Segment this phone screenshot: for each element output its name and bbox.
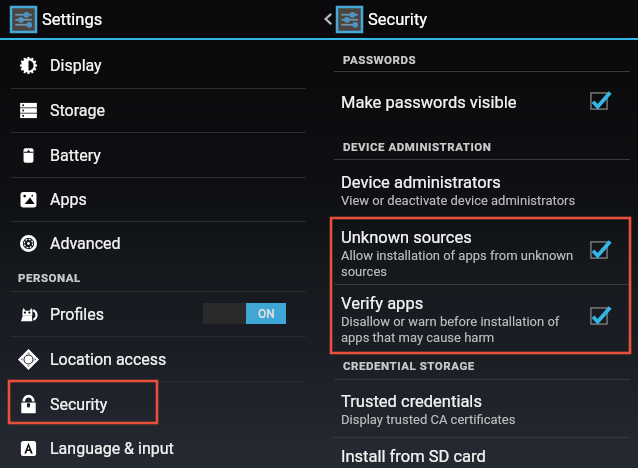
- staticText: Display trusted CA certificates: [341, 412, 516, 427]
- staticText: DEVICE ADMINISTRATION: [343, 140, 492, 153]
- button[interactable]: Unknown sources: [341, 228, 591, 247]
- staticText: CREDENTIAL STORAGE: [343, 359, 475, 372]
- staticText: Language & input: [50, 439, 174, 458]
- button[interactable]: Storage: [0, 88, 312, 132]
- staticText: Allow installation of apps from unknown: [341, 248, 574, 263]
- staticText: PERSONAL: [18, 271, 81, 284]
- button[interactable]: Checkbox, checked: [586, 88, 612, 114]
- staticText: Disallow or warn before installation of: [341, 314, 560, 329]
- other: Settings: [337, 7, 362, 32]
- button[interactable]: Apps: [0, 177, 312, 221]
- staticText: Make passwords visible: [341, 93, 517, 112]
- button[interactable]: Checkbox, checked: [586, 237, 612, 263]
- staticText: ON: [258, 307, 275, 321]
- staticText: sources: [341, 264, 387, 279]
- staticText: Device administrators: [341, 173, 501, 192]
- button[interactable]: Verify apps: [341, 294, 591, 313]
- button[interactable]: Device administrators: [341, 173, 591, 192]
- staticText: Verify apps: [341, 294, 424, 313]
- staticText: Trusted credentials: [341, 392, 482, 411]
- staticText: Advanced: [50, 234, 121, 253]
- staticText: Battery: [50, 146, 101, 165]
- button[interactable]: Install from SD card: [341, 447, 591, 466]
- other: Back: [322, 13, 334, 25]
- button[interactable]: Profiles: [0, 292, 312, 336]
- button[interactable]: Security: [0, 382, 312, 426]
- staticText: Location access: [50, 350, 167, 369]
- staticText: Storage: [50, 101, 105, 120]
- other: Settings: [11, 7, 36, 32]
- button[interactable]: Location access: [0, 337, 312, 381]
- staticText: Unknown sources: [341, 228, 472, 247]
- staticText: Settings: [42, 10, 103, 29]
- button[interactable]: Make passwords visible: [341, 93, 591, 112]
- staticText: apps that may cause harm: [341, 330, 495, 345]
- button[interactable]: Advanced: [0, 221, 312, 265]
- staticText: Profiles: [50, 305, 104, 324]
- staticText: Install from SD card: [341, 447, 486, 466]
- button[interactable]: Language & input: [0, 426, 312, 468]
- staticText: Security: [50, 395, 108, 414]
- button[interactable]: Display: [0, 43, 312, 87]
- button[interactable]: Settings: [0, 0, 312, 38]
- staticText: View or deactivate device administrators: [341, 193, 576, 208]
- button[interactable]: Profiles toggle, on: [203, 303, 286, 324]
- button[interactable]: Back: [318, 0, 638, 38]
- staticText: Security: [368, 10, 428, 29]
- button[interactable]: Checkbox, checked: [586, 303, 612, 329]
- staticText: Apps: [50, 190, 87, 209]
- button[interactable]: Trusted credentials: [341, 392, 591, 411]
- staticText: PASSWORDS: [343, 53, 417, 66]
- staticText: Display: [50, 56, 102, 75]
- button[interactable]: Battery: [0, 133, 312, 177]
